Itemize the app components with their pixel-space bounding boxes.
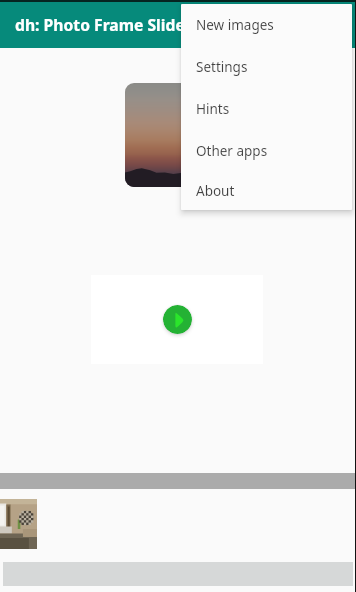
button[interactable]: Hints — [181, 88, 352, 130]
staticText: Hints — [196, 100, 230, 118]
button[interactable] — [0, 499, 37, 549]
button[interactable]: New images — [181, 4, 352, 46]
staticText: dh: Photo Frame Slideshow — [15, 14, 226, 35]
staticText: About — [196, 182, 235, 200]
staticText: New images — [196, 16, 274, 34]
button[interactable]: Play slideshow — [163, 305, 192, 334]
button[interactable]: Settings — [181, 46, 352, 88]
staticText: Settings — [196, 58, 248, 76]
staticText: Other apps — [196, 142, 268, 160]
button[interactable]: Other apps — [181, 130, 352, 172]
button[interactable]: About — [181, 172, 352, 210]
button[interactable] — [125, 83, 230, 187]
